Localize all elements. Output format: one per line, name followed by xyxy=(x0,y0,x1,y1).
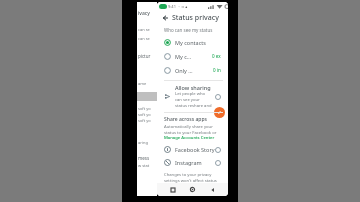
staticText: Status privacy xyxy=(172,13,219,23)
staticText: Facebook Story xyxy=(175,146,215,153)
staticText: My contacts except... xyxy=(175,53,193,60)
staticText: w stat xyxy=(138,163,150,168)
staticText: 0 ex xyxy=(212,53,221,59)
button[interactable]: My contacts xyxy=(162,35,223,49)
staticText: ame xyxy=(138,81,147,86)
staticText: Share across apps xyxy=(164,116,207,123)
staticText: 0 in xyxy=(213,67,221,73)
staticText: can se xyxy=(138,36,150,41)
staticText: soft yo xyxy=(138,106,151,111)
button[interactable]: Home xyxy=(188,185,197,194)
staticText: can se xyxy=(138,27,150,32)
staticText: My contacts xyxy=(175,39,206,46)
staticText: Instagram Story xyxy=(175,159,215,166)
button[interactable]: Back xyxy=(208,185,217,194)
staticText: Allow sharing xyxy=(175,84,211,91)
button[interactable]: Facebook Story xyxy=(162,143,223,156)
staticText: Who can see my status updates xyxy=(164,27,223,33)
staticText: Only share with... xyxy=(175,67,194,74)
staticText: soft yo xyxy=(138,118,151,123)
staticText: pictur xyxy=(138,53,151,59)
staticText: ivacy xyxy=(138,10,150,17)
staticText: Changes to your privacy settings won't a… xyxy=(164,172,221,183)
button[interactable]: Only share with... xyxy=(162,63,223,77)
staticText: Automatically share your status to your … xyxy=(164,124,221,135)
staticText: aring xyxy=(138,140,148,145)
button[interactable]: Back xyxy=(160,13,170,23)
button[interactable]: Recents xyxy=(168,185,177,194)
staticText: mess xyxy=(138,155,150,161)
staticText: soft yo xyxy=(138,112,151,117)
staticText: 9:41 ◦ ▫ ▴ xyxy=(168,4,188,9)
button[interactable]: My contacts except... xyxy=(162,49,223,63)
button[interactable]: Manage Accounts Center xyxy=(164,135,215,141)
staticText: Let people who can see your status resha… xyxy=(175,91,212,109)
button[interactable]: Edit status xyxy=(214,107,225,118)
button[interactable]: Allow sharing xyxy=(162,81,223,112)
button[interactable]: Instagram Story xyxy=(162,156,223,169)
